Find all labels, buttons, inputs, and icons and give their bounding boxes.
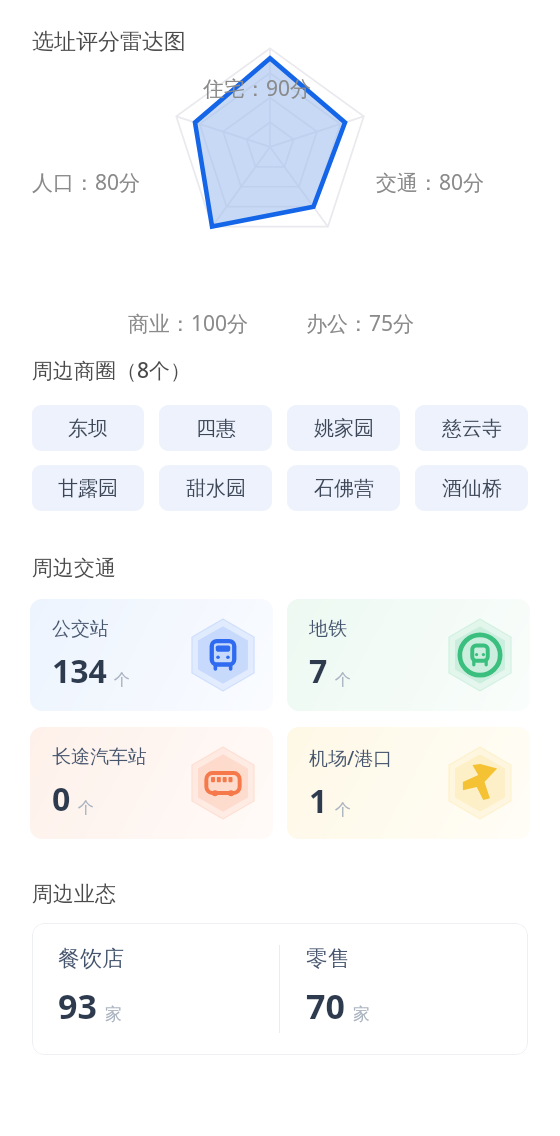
staticText: 机场/港口 [309, 745, 393, 771]
button[interactable]: 慈云寺 [415, 405, 528, 451]
other: 公交站 [187, 619, 259, 691]
staticText: 交通：80分 [376, 168, 485, 197]
staticText: 个 [78, 798, 94, 818]
button[interactable]: 四惠 [159, 405, 272, 451]
staticText: 地铁 [309, 617, 347, 641]
staticText: 东坝 [68, 416, 108, 441]
staticText: 个 [114, 670, 130, 690]
staticText: 70 [306, 983, 345, 1029]
staticText: 慈云寺 [442, 416, 502, 441]
staticText: 7 [309, 649, 328, 693]
button[interactable]: 地铁 [287, 599, 530, 711]
staticText: 周边交通 [32, 555, 116, 581]
button[interactable]: 餐饮店 [32, 923, 528, 1055]
button[interactable]: 机场/港口 [287, 727, 530, 839]
button[interactable]: 甜水园 [159, 465, 272, 511]
staticText: 零售 [306, 945, 350, 973]
button[interactable]: 公交站 [30, 599, 273, 711]
staticText: 餐饮店 [58, 945, 124, 973]
staticText: 公交站 [52, 617, 109, 641]
staticText: 长途汽车站 [52, 745, 147, 769]
staticText: 住宅：90分 [203, 74, 312, 103]
staticText: 酒仙桥 [442, 476, 502, 501]
staticText: 个 [335, 670, 351, 690]
staticText: 甜水园 [186, 476, 246, 501]
other: 地铁 [444, 619, 516, 691]
staticText: 人口：80分 [32, 168, 141, 197]
other: 长途汽车站 [187, 747, 259, 819]
staticText: 商业：100分 [128, 309, 249, 338]
staticText: 选址评分雷达图 [32, 28, 186, 56]
staticText: 家 [353, 1004, 370, 1025]
button[interactable]: 长途汽车站 [30, 727, 273, 839]
staticText: 个 [335, 800, 351, 820]
staticText: 0 [52, 777, 71, 821]
staticText: 134 [52, 649, 107, 693]
staticText: 办公：75分 [306, 309, 415, 338]
staticText: 周边商圈（8个） [32, 356, 192, 385]
staticText: 甘露园 [58, 476, 118, 501]
button[interactable]: 酒仙桥 [415, 465, 528, 511]
staticText: 家 [105, 1004, 122, 1025]
staticText: 93 [58, 983, 97, 1029]
other: 机场/港口 [444, 747, 516, 819]
staticText: 1 [309, 779, 328, 823]
button[interactable]: 东坝 [32, 405, 144, 451]
staticText: 石佛营 [314, 476, 374, 501]
staticText: 四惠 [196, 416, 236, 441]
button[interactable]: 甘露园 [32, 465, 144, 511]
staticText: 周边业态 [32, 881, 116, 907]
button[interactable]: 石佛营 [287, 465, 400, 511]
staticText: 姚家园 [314, 416, 374, 441]
button[interactable]: 姚家园 [287, 405, 400, 451]
